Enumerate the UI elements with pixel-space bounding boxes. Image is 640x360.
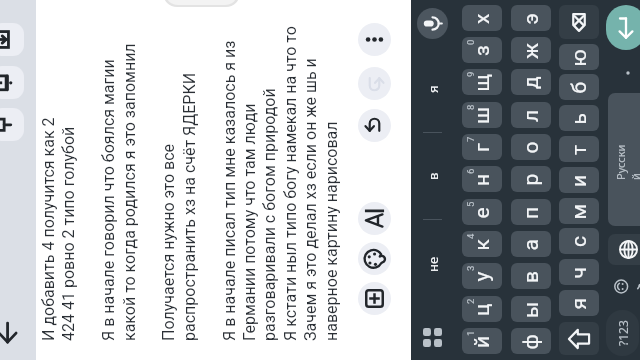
button[interactable]: з xyxy=(462,37,502,63)
button[interactable]: Shift xyxy=(559,322,599,355)
staticText: 4 xyxy=(465,233,476,239)
button[interactable]: у xyxy=(462,263,502,289)
button[interactable]: Undo xyxy=(358,109,391,142)
button[interactable]: в xyxy=(511,263,551,289)
button[interactable]: щ xyxy=(462,69,502,95)
staticText: б xyxy=(566,81,591,93)
staticText: ф xyxy=(518,333,543,349)
staticText: э xyxy=(518,12,543,24)
staticText: Я кстати ныл типо богу намекал на что то xyxy=(281,26,299,341)
button[interactable]: ф xyxy=(511,328,551,354)
staticText: Я в начале писал тип мне казалось я из xyxy=(220,40,238,341)
button[interactable]: Insert xyxy=(358,282,391,315)
button[interactable]: Redo xyxy=(358,67,391,100)
button[interactable]: е xyxy=(462,199,502,225)
button[interactable]: м xyxy=(559,198,599,224)
staticText: ю xyxy=(566,48,591,66)
button[interactable]: Floating toolbar xyxy=(163,0,240,7)
button[interactable]: г xyxy=(462,134,502,160)
button[interactable]: в xyxy=(411,138,455,214)
staticText: ь xyxy=(566,112,591,124)
button[interactable]: ш xyxy=(462,102,502,128)
staticText: ц xyxy=(470,303,495,316)
button[interactable]: к xyxy=(462,231,502,257)
staticText: е xyxy=(469,206,494,218)
staticText: 8 xyxy=(465,104,476,110)
button[interactable]: н xyxy=(462,166,502,192)
staticText: какой то когда родился я это запомнил xyxy=(120,43,138,341)
button[interactable]: Backspace xyxy=(559,5,599,39)
staticText: распространить хз на счёт ЯДЕРКИ xyxy=(180,72,198,341)
button[interactable]: р xyxy=(511,166,551,192)
button[interactable]: ч xyxy=(559,259,599,285)
staticText: ж xyxy=(519,42,544,59)
button[interactable]: Tag xyxy=(0,108,24,141)
staticText: з xyxy=(470,45,495,56)
button[interactable]: о xyxy=(511,134,551,160)
button[interactable]: Emoji xyxy=(608,271,640,302)
staticText: 9 xyxy=(465,71,476,77)
button[interactable]: Import xyxy=(0,23,24,56)
button[interactable]: Voice input xyxy=(417,8,448,39)
button[interactable]: Colour xyxy=(358,242,391,275)
button[interactable]: ы xyxy=(511,296,551,322)
button[interactable]: и xyxy=(559,167,599,193)
staticText: 3 xyxy=(465,265,476,271)
button[interactable]: ь xyxy=(559,105,599,131)
button[interactable]: Period xyxy=(608,60,640,86)
staticText: я xyxy=(566,297,591,309)
staticText: наверное картину нарисовал xyxy=(322,121,340,341)
staticText: а xyxy=(518,238,543,250)
staticText: Зачем я это делал хз если он же шь и xyxy=(301,58,319,341)
button[interactable]: с xyxy=(559,228,599,254)
staticText: щ xyxy=(469,73,494,91)
staticText: х xyxy=(470,13,495,24)
button[interactable]: ц xyxy=(462,296,502,322)
button[interactable]: Text format xyxy=(358,202,391,235)
staticText: 7 xyxy=(465,136,476,142)
staticText: разговаривали с богом природой xyxy=(260,88,278,341)
button[interactable]: Symbols xyxy=(606,310,639,356)
staticText: в xyxy=(424,172,442,180)
button[interactable]: п xyxy=(511,199,551,225)
button[interactable]: я xyxy=(411,51,455,127)
staticText: т xyxy=(567,144,592,155)
button[interactable]: ж xyxy=(511,37,551,63)
button[interactable]: т xyxy=(559,136,599,162)
staticText: ы xyxy=(519,301,544,318)
button[interactable]: Keyboard options xyxy=(423,328,442,347)
staticText: Я в начале говорил что боялся магии xyxy=(99,59,117,341)
staticText: 1 xyxy=(465,330,476,336)
staticText: л xyxy=(519,109,544,122)
button[interactable]: ю xyxy=(559,44,599,70)
button[interactable]: Русский xyxy=(608,93,640,226)
staticText: 2 xyxy=(465,298,476,304)
staticText: и xyxy=(567,174,592,187)
staticText: о xyxy=(518,141,543,153)
staticText: 424 41 ровно 2 типо голубой xyxy=(59,126,77,341)
staticText: с xyxy=(567,236,592,247)
staticText: д xyxy=(519,76,544,89)
button[interactable]: л xyxy=(511,102,551,128)
button[interactable]: Enter xyxy=(606,5,640,50)
staticText: И добавить 4 получится как 2 xyxy=(39,117,57,341)
button[interactable]: Change language xyxy=(608,234,640,265)
staticText: 6 xyxy=(465,168,476,174)
staticText: м xyxy=(566,203,591,219)
button[interactable]: More options xyxy=(358,23,391,56)
button[interactable]: не xyxy=(411,226,455,302)
button[interactable]: й xyxy=(462,328,502,354)
button[interactable]: х xyxy=(462,5,502,31)
staticText: не xyxy=(424,256,442,272)
staticText: р xyxy=(518,173,543,185)
button[interactable]: д xyxy=(511,69,551,95)
button[interactable]: б xyxy=(559,74,599,100)
button[interactable]: а xyxy=(511,231,551,257)
button[interactable]: Add field xyxy=(0,66,24,99)
button[interactable]: э xyxy=(511,5,551,31)
button[interactable]: я xyxy=(559,290,599,316)
staticText: в xyxy=(519,270,544,283)
staticText: ч xyxy=(566,266,591,278)
button[interactable]: Hide keyboard xyxy=(0,320,25,346)
staticText: 5 xyxy=(465,201,476,207)
